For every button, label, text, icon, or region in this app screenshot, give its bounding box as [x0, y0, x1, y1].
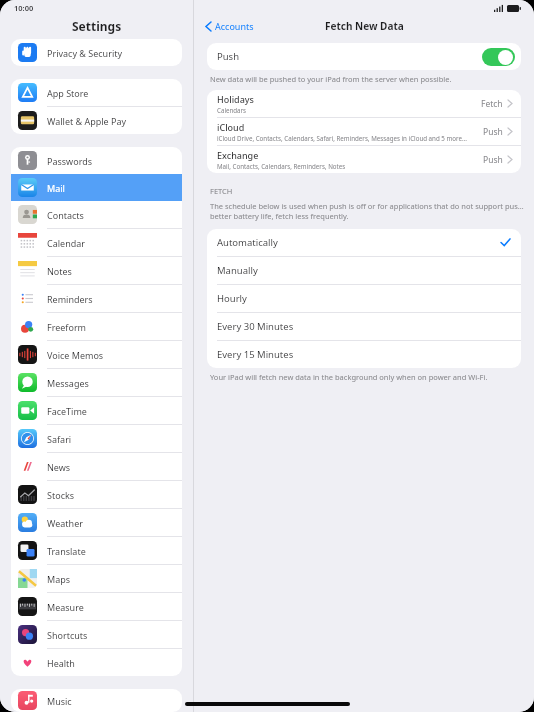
- staticText: App Store: [47, 87, 89, 99]
- button[interactable]: Hourly: [207, 285, 521, 313]
- staticText: Calendars: [217, 106, 247, 114]
- staticText: iCloud Drive, Contacts, Calendars, Safar…: [217, 134, 467, 142]
- staticText: Freeform: [47, 321, 87, 333]
- staticText: The schedule below is used when push is …: [210, 201, 524, 211]
- staticText: Fetch: [481, 98, 503, 110]
- staticText: Messages: [47, 377, 89, 389]
- staticText: Fetch New Data: [325, 19, 404, 33]
- button[interactable]: Measure: [11, 593, 182, 621]
- staticText: Music: [47, 695, 72, 707]
- staticText: Contacts: [47, 209, 84, 221]
- staticText: Accounts: [215, 20, 254, 32]
- button[interactable]: iCloud: [207, 118, 521, 146]
- staticText: Wallet & Apple Pay: [47, 115, 127, 127]
- button[interactable]: Weather: [11, 509, 182, 537]
- button[interactable]: Reminders: [11, 285, 182, 313]
- staticText: Measure: [47, 601, 84, 613]
- button[interactable]: Privacy & Security: [11, 39, 182, 66]
- staticText: Translate: [47, 545, 86, 557]
- button[interactable]: Every 30 Minutes: [207, 313, 521, 341]
- staticText: FETCH: [210, 186, 233, 196]
- button[interactable]: Wallet & Apple Pay: [11, 107, 182, 134]
- button[interactable]: Manually: [207, 257, 521, 285]
- button[interactable]: Exchange: [207, 146, 521, 173]
- button[interactable]: App Store: [11, 79, 182, 107]
- staticText: Mail, Contacts, Calendars, Reminders, No…: [217, 162, 346, 170]
- button[interactable]: Passwords: [11, 147, 182, 174]
- staticText: 10:00: [14, 3, 34, 13]
- staticText: iCloud: [217, 121, 245, 133]
- button[interactable]: Music: [11, 689, 182, 712]
- button[interactable]: Mail: [11, 174, 182, 201]
- staticText: Safari: [47, 433, 72, 445]
- button[interactable]: Voice Memos: [11, 341, 182, 369]
- button[interactable]: Health: [11, 649, 182, 676]
- staticText: Push: [483, 126, 503, 138]
- staticText: better battery life, fetch less frequent…: [210, 211, 349, 221]
- button[interactable]: Freeform: [11, 313, 182, 341]
- staticText: Your iPad will fetch new data in the bac…: [210, 372, 488, 382]
- staticText: Hourly: [217, 292, 247, 305]
- staticText: New data will be pushed to your iPad fro…: [210, 74, 452, 84]
- button[interactable]: Maps: [11, 565, 182, 593]
- button[interactable]: Stocks: [11, 481, 182, 509]
- button[interactable]: Accounts: [204, 18, 256, 34]
- staticText: Reminders: [47, 293, 93, 305]
- button[interactable]: Translate: [11, 537, 182, 565]
- button[interactable]: Calendar: [11, 229, 182, 257]
- staticText: Mail: [47, 182, 65, 194]
- button[interactable]: Holidays: [207, 90, 521, 118]
- staticText: Weather: [47, 517, 83, 529]
- staticText: Calendar: [47, 237, 85, 249]
- staticText: Health: [47, 657, 75, 669]
- button[interactable]: Automatically: [207, 229, 521, 257]
- button[interactable]: Contacts: [11, 201, 182, 229]
- staticText: Settings: [72, 18, 122, 34]
- staticText: Notes: [47, 265, 72, 277]
- button[interactable]: Notes: [11, 257, 182, 285]
- staticText: Every 30 Minutes: [217, 320, 294, 333]
- button[interactable]: FaceTime: [11, 397, 182, 425]
- staticText: Automatically: [217, 236, 278, 249]
- staticText: FaceTime: [47, 405, 87, 417]
- button[interactable]: Safari: [11, 425, 182, 453]
- staticText: Voice Memos: [47, 349, 104, 361]
- staticText: Passwords: [47, 155, 93, 167]
- staticText: Every 15 Minutes: [217, 348, 294, 361]
- staticText: News: [47, 461, 71, 473]
- button[interactable]: Shortcuts: [11, 621, 182, 649]
- button[interactable]: News: [11, 453, 182, 481]
- button[interactable]: Push toggle, on: [482, 48, 515, 66]
- staticText: Holidays: [217, 93, 254, 105]
- staticText: Push: [217, 50, 240, 63]
- staticText: Maps: [47, 573, 71, 585]
- staticText: Exchange: [217, 149, 259, 161]
- button[interactable]: Push: [217, 43, 515, 70]
- staticText: Stocks: [47, 489, 75, 501]
- staticText: Manually: [217, 264, 258, 277]
- staticText: Push: [483, 154, 503, 166]
- staticText: Privacy & Security: [47, 47, 123, 59]
- button[interactable]: Messages: [11, 369, 182, 397]
- button[interactable]: Every 15 Minutes: [207, 341, 521, 368]
- staticText: Shortcuts: [47, 629, 88, 641]
